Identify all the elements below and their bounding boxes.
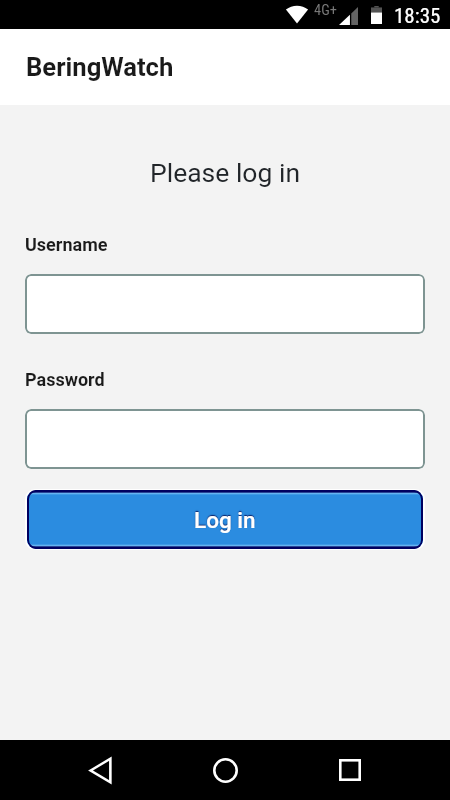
button[interactable]: Log in bbox=[25, 489, 425, 550]
staticText: 4G+ bbox=[314, 2, 337, 19]
button[interactable]: Back bbox=[72, 742, 128, 798]
button[interactable]: Home bbox=[197, 742, 253, 798]
staticText: Please log in bbox=[0, 157, 450, 188]
other: Wi-Fi bbox=[280, 2, 314, 26]
other: Battery bbox=[371, 6, 382, 24]
staticText: Username bbox=[25, 234, 108, 255]
staticText: Password bbox=[25, 369, 105, 390]
other: Signal bbox=[339, 7, 358, 25]
button[interactable] bbox=[25, 409, 425, 469]
button[interactable] bbox=[25, 274, 425, 334]
staticText: BeringWatch bbox=[26, 52, 174, 82]
button[interactable]: Recents bbox=[322, 742, 378, 798]
staticText: Log in bbox=[194, 507, 256, 533]
staticText: 18:35 bbox=[394, 4, 441, 29]
